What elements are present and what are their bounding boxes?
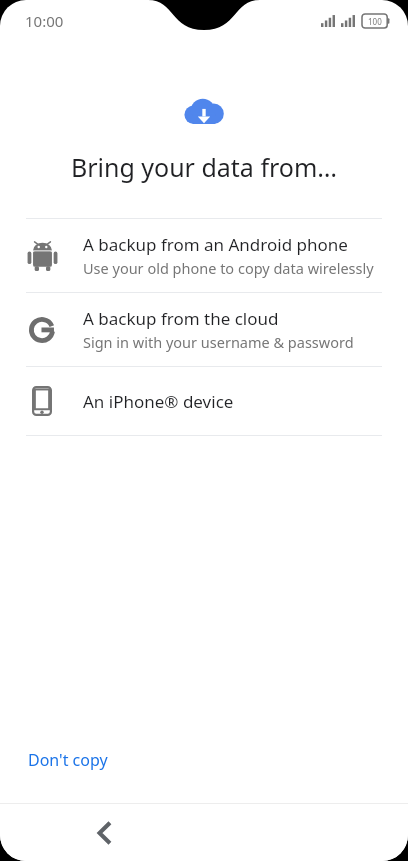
staticText: A backup from the cloud: [83, 307, 279, 330]
staticText: Bring your data from…: [0, 150, 408, 184]
button[interactable]: Don't copy: [26, 743, 110, 777]
staticText: Don't copy: [28, 749, 108, 771]
staticText: A backup from an Android phone: [83, 233, 348, 256]
button[interactable]: A backup from the cloud: [0, 293, 408, 366]
staticText: Use your old phone to copy data wireless…: [83, 258, 374, 278]
staticText: 100: [368, 16, 382, 27]
staticText: An iPhone® device: [83, 390, 234, 413]
button[interactable]: A backup from an Android phone: [0, 219, 408, 292]
staticText: Sign in with your username & password: [83, 332, 354, 352]
button[interactable]: An iPhone® device: [0, 367, 408, 435]
button[interactable]: Back: [80, 809, 128, 857]
staticText: 10:00: [25, 11, 64, 31]
